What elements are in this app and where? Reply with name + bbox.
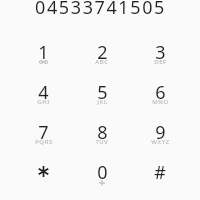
staticText: 5 <box>97 80 108 102</box>
staticText: GHI <box>37 98 50 106</box>
button[interactable]: 2 <box>73 40 131 80</box>
button[interactable]: 5 <box>73 80 131 120</box>
staticText: DEF <box>154 58 167 66</box>
button[interactable]: star <box>14 160 73 200</box>
button[interactable]: Dialed number 04533741505 <box>0 0 200 19</box>
staticText: PQRS <box>35 138 53 146</box>
staticText: WXYZ <box>151 138 170 146</box>
staticText: JKL <box>97 98 108 106</box>
staticText: 6 <box>155 80 166 102</box>
staticText: ABC <box>95 58 109 66</box>
button[interactable]: 7 <box>14 120 73 160</box>
button[interactable]: 0 plus <box>73 160 131 200</box>
staticText: 7 <box>38 120 49 142</box>
button[interactable]: 8 <box>73 120 131 160</box>
button[interactable]: 1 voicemail <box>14 40 73 80</box>
staticText: 9 <box>155 120 166 142</box>
button[interactable]: 4 <box>14 80 73 120</box>
staticText: 3 <box>155 40 166 62</box>
staticText: 2 <box>97 40 108 62</box>
staticText: MNO <box>152 98 169 106</box>
staticText: # <box>154 160 166 182</box>
button[interactable]: 6 <box>131 80 189 120</box>
button[interactable]: 9 <box>131 120 189 160</box>
staticText: 0 <box>97 160 108 182</box>
staticText: 4 <box>38 80 49 102</box>
button[interactable]: pound <box>131 160 189 200</box>
staticText: 8 <box>97 120 108 142</box>
button[interactable]: 3 <box>131 40 189 80</box>
staticText: 1 <box>38 40 49 62</box>
staticText: 04533741505 <box>35 0 166 19</box>
staticText: TUV <box>95 138 109 146</box>
